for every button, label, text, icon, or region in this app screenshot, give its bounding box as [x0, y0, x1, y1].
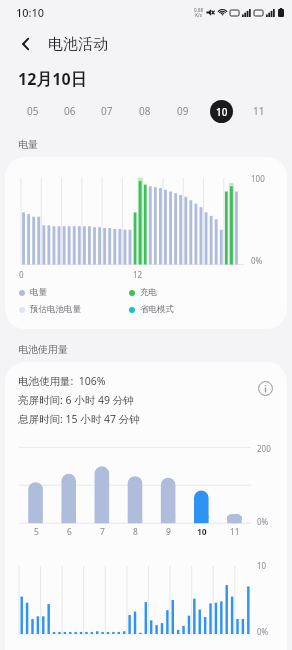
staticText: 亮屏时间: 6 小时 49 分钟 — [18, 393, 134, 407]
button[interactable]: 10 — [202, 94, 240, 128]
staticText: 8 — [133, 526, 138, 538]
staticText: 06 — [64, 104, 76, 118]
staticText: 电量 — [18, 138, 38, 151]
staticText: 10 — [197, 526, 207, 538]
staticText: 08 — [139, 104, 151, 118]
staticText: 电池使用量: 106% — [18, 374, 106, 388]
staticText: 12 — [133, 269, 143, 280]
staticText: 11 — [253, 104, 265, 118]
staticText: 省电模式 — [140, 304, 174, 315]
staticText: 09 — [177, 104, 189, 118]
staticText: 12月10日 — [18, 68, 87, 90]
staticText: 0% — [257, 516, 269, 527]
button[interactable]: Info — [253, 376, 277, 400]
staticText: 9 — [166, 526, 171, 538]
button[interactable]: 06 — [51, 94, 88, 128]
staticText: 0% — [251, 255, 263, 266]
staticText: 7 — [100, 526, 105, 538]
staticText: 5 — [34, 526, 39, 538]
staticText: 11 — [230, 526, 240, 538]
staticText: 0% — [257, 626, 269, 637]
staticText: 电池活动 — [48, 35, 108, 54]
staticText: 07 — [101, 104, 113, 118]
staticText: 0 — [19, 269, 24, 280]
staticText: 电池使用量 — [18, 343, 68, 356]
staticText: 10 — [257, 560, 267, 571]
button[interactable]: 08 — [126, 94, 164, 128]
staticText: 0.08 K/s — [194, 7, 203, 18]
staticText: 10 — [216, 105, 228, 119]
button[interactable]: 05 — [14, 94, 51, 128]
button[interactable]: 11 — [240, 94, 278, 128]
staticText: 05 — [27, 104, 39, 118]
staticText: 100 — [251, 173, 265, 184]
staticText: 充电 — [140, 287, 157, 298]
staticText: 息屏时间: 15 小时 47 分钟 — [18, 412, 140, 426]
button[interactable]: 100 — [5, 157, 287, 329]
button[interactable]: 09 — [164, 94, 202, 128]
staticText: 电量 — [30, 287, 47, 298]
staticText: 10:10 — [16, 5, 45, 20]
staticText: 200 — [257, 443, 271, 454]
staticText: 预估电池电量 — [30, 304, 81, 315]
button[interactable]: 07 — [88, 94, 126, 128]
staticText: 6 — [67, 526, 72, 538]
button[interactable]: Back — [12, 30, 40, 58]
